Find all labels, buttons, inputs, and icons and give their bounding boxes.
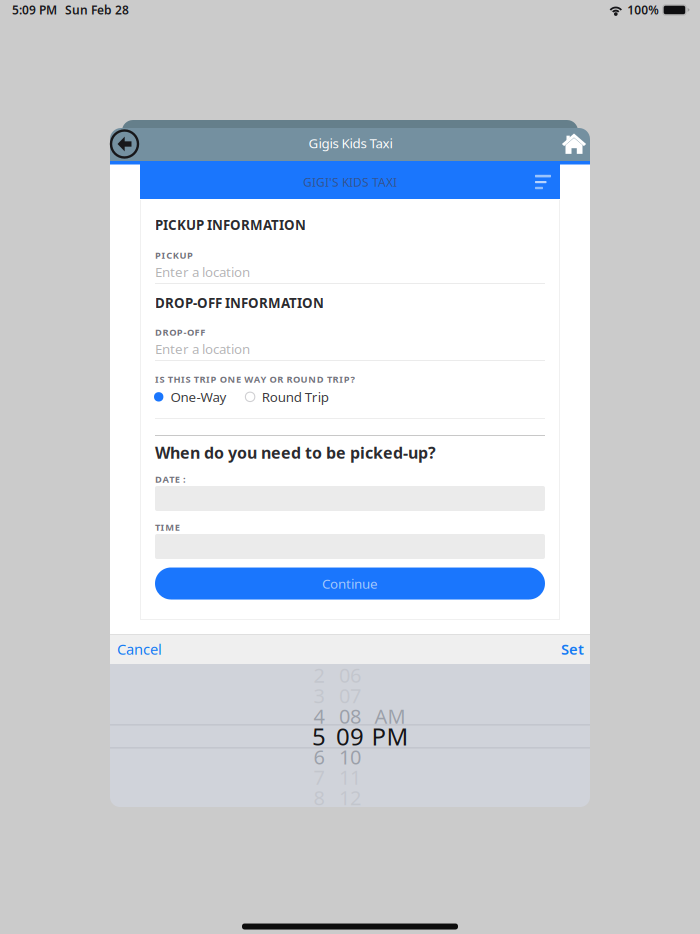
- staticText: 8: [313, 784, 324, 811]
- staticText: Cancel: [117, 639, 162, 659]
- staticText: DROP-OFF INFORMATION: [155, 294, 324, 312]
- staticText: PM: [371, 720, 408, 752]
- button[interactable]: Menu: [535, 174, 551, 190]
- staticText: Sun Feb 28: [65, 2, 129, 18]
- button[interactable]: Round Trip: [245, 388, 329, 406]
- staticText: Gigis Kids Taxi: [308, 134, 392, 152]
- staticText: 7: [313, 764, 324, 790]
- staticText: 11: [339, 764, 361, 790]
- staticText: 4: [313, 703, 324, 729]
- staticText: Round Trip: [262, 388, 329, 406]
- staticText: PICKUP: [155, 249, 193, 261]
- staticText: When do you need to be picked-up?: [155, 442, 436, 463]
- staticText: 3: [313, 682, 324, 709]
- staticText: DROP-OFF: [155, 326, 205, 338]
- staticText: GIGI'S KIDS TAXI: [303, 174, 397, 190]
- staticText: Enter a location: [155, 340, 250, 358]
- staticText: 6: [313, 743, 324, 770]
- staticText: 2: [313, 662, 324, 688]
- button[interactable]: One-Way: [154, 388, 226, 406]
- staticText: 06: [339, 662, 361, 688]
- staticText: 10: [339, 743, 361, 770]
- staticText: Enter a location: [155, 263, 250, 281]
- staticText: 12: [339, 784, 361, 811]
- staticText: IS THIS TRIP ONE WAY OR ROUND TRIP?: [155, 373, 354, 385]
- staticText: PICKUP INFORMATION: [155, 216, 306, 234]
- button[interactable]: Cancel: [117, 634, 181, 664]
- staticText: One-Way: [170, 388, 226, 406]
- staticText: Continue: [322, 575, 378, 592]
- staticText: 5:09 PM: [12, 2, 57, 18]
- button[interactable]: Set: [540, 634, 584, 664]
- staticText: 08: [339, 703, 361, 729]
- staticText: 1: [313, 641, 324, 668]
- staticText: 05: [339, 641, 361, 668]
- staticText: AM: [374, 703, 405, 729]
- button[interactable]: Home: [561, 132, 586, 156]
- staticText: 09: [336, 720, 364, 752]
- staticText: Set: [561, 639, 584, 659]
- button[interactable]: Back: [109, 129, 139, 159]
- staticText: DATE :: [155, 473, 186, 485]
- staticText: 100%: [627, 2, 659, 18]
- button[interactable]: Continue: [155, 567, 545, 599]
- staticText: 07: [339, 682, 361, 709]
- staticText: 5: [312, 720, 326, 752]
- staticText: TIME: [155, 521, 180, 533]
